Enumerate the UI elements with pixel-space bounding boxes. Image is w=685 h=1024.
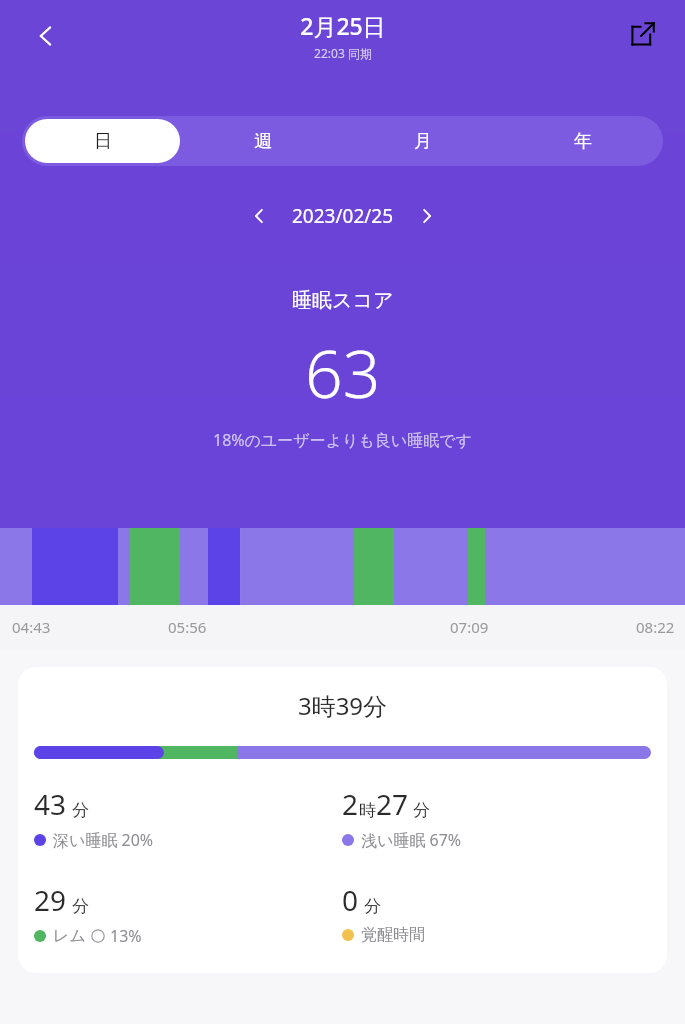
button[interactable]: Back xyxy=(22,12,70,60)
staticText: 07:09 xyxy=(450,617,489,637)
button[interactable]: 月 xyxy=(346,119,500,163)
button[interactable]: 日 xyxy=(25,119,180,163)
staticText: 分 xyxy=(364,896,381,917)
button[interactable]: 29 xyxy=(34,881,342,947)
staticText: 週 xyxy=(254,130,272,153)
button[interactable]: Next day xyxy=(406,195,448,237)
button[interactable]: 0 xyxy=(342,881,651,945)
staticText: 2023/02/25 xyxy=(292,203,394,229)
staticText: 日 xyxy=(94,130,112,153)
button[interactable]: 2 xyxy=(342,785,651,851)
staticText: 分 xyxy=(72,896,89,917)
staticText: 0 xyxy=(342,881,359,919)
staticText: 05:56 xyxy=(168,617,207,637)
staticText: 分 xyxy=(72,800,89,821)
staticText: 08:22 xyxy=(636,617,675,637)
staticText: 18%のユーザーよりも良い睡眠です xyxy=(213,429,472,451)
button[interactable]: 週 xyxy=(186,119,340,163)
staticText: 浅い睡眠 67% xyxy=(361,829,462,851)
button[interactable]: Share xyxy=(621,12,665,56)
staticText: 睡眠スコア xyxy=(292,288,394,313)
staticText: 27 xyxy=(376,785,409,823)
staticText: 時 xyxy=(359,800,376,821)
button[interactable]: 3時39分 xyxy=(18,667,667,973)
staticText: 22:03 同期 xyxy=(314,45,372,61)
staticText: 2月25日 xyxy=(300,10,386,41)
staticText: 63 xyxy=(305,327,381,417)
button[interactable]: 年 xyxy=(506,119,660,163)
staticText: 年 xyxy=(574,130,592,153)
staticText: 29 xyxy=(34,881,67,919)
staticText: 深い睡眠 20% xyxy=(53,829,154,851)
button[interactable]: 43 xyxy=(34,785,342,851)
staticText: 3時39分 xyxy=(18,689,667,722)
staticText: レム xyxy=(53,926,86,946)
staticText: 13% xyxy=(110,925,142,947)
staticText: 覚醒時間 xyxy=(361,925,425,945)
staticText: 43 xyxy=(34,785,67,823)
staticText: 月 xyxy=(414,130,432,153)
button[interactable]: Previous day xyxy=(238,195,280,237)
staticText: 2 xyxy=(342,785,359,823)
staticText: 分 xyxy=(413,800,430,821)
staticText: 04:43 xyxy=(12,617,51,637)
